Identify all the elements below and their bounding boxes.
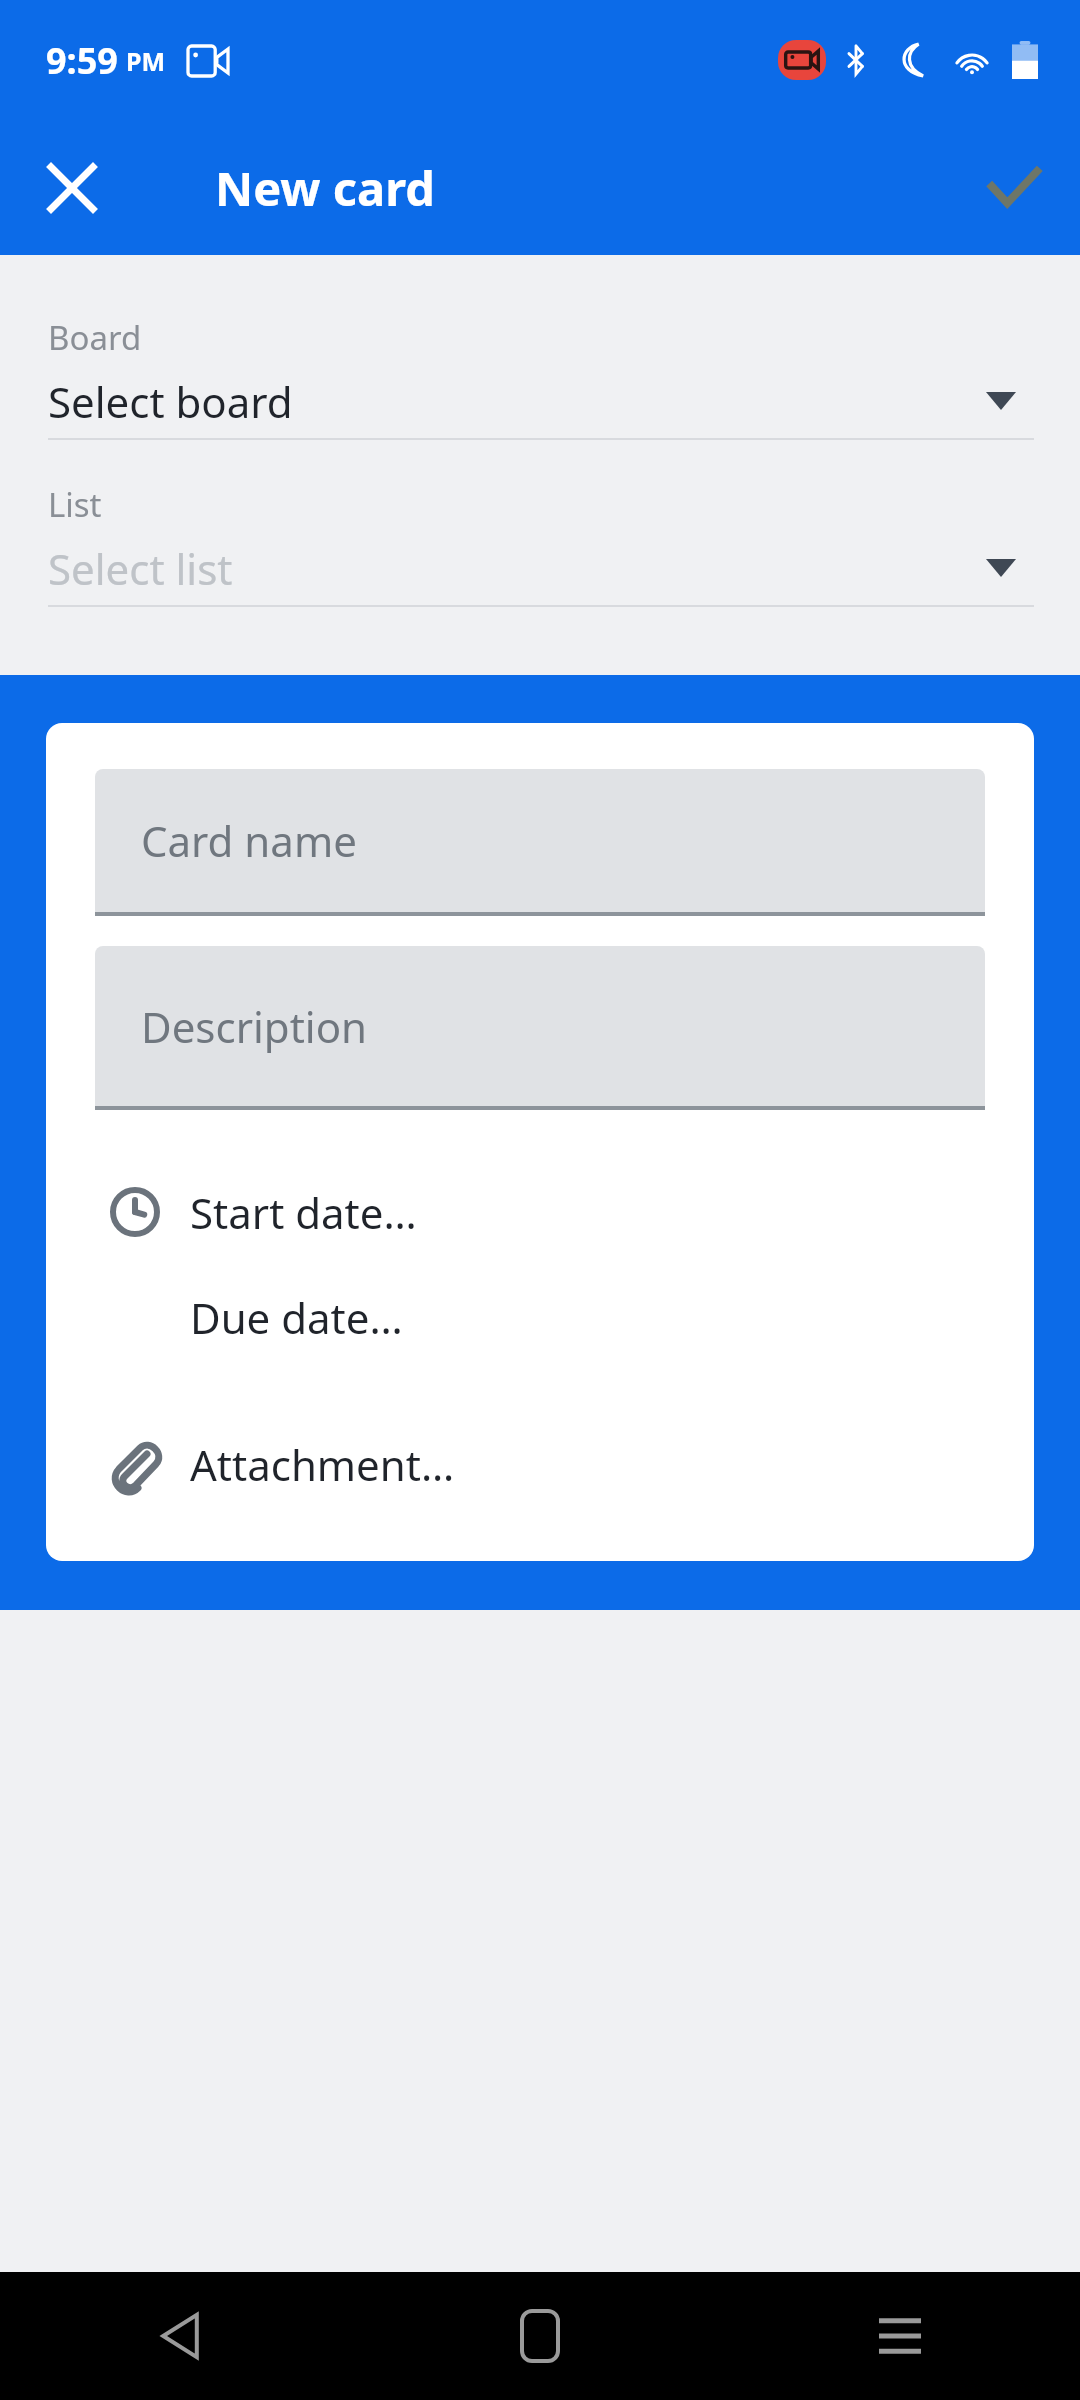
button[interactable]: Description [95,946,985,1110]
button[interactable]: Select list [0,539,1080,607]
button[interactable]: Start date… [46,1172,1034,1252]
staticText: Description [141,998,368,1055]
button[interactable]: Save [966,140,1062,236]
staticText: 9:59 [46,36,118,85]
staticText: List [48,482,102,527]
staticText: Select list [48,540,233,597]
staticText: Attachment… [190,1436,455,1493]
button[interactable]: Due date… [46,1282,1034,1352]
staticText: Select board [48,373,293,430]
button[interactable]: Attachment… [46,1424,1034,1504]
button[interactable]: Close [28,144,116,232]
staticText: New card [215,156,435,220]
staticText: PM [126,44,166,78]
staticText: Card name [141,812,357,869]
staticText: Start date… [190,1184,417,1241]
button[interactable]: Home [360,2272,720,2400]
button[interactable]: Recent apps [720,2272,1080,2400]
button[interactable]: Back [0,2272,360,2400]
button[interactable]: Card name [95,769,985,916]
button[interactable]: Select board [0,372,1080,440]
staticText: Board [48,315,142,360]
staticText: Due date… [190,1289,403,1346]
